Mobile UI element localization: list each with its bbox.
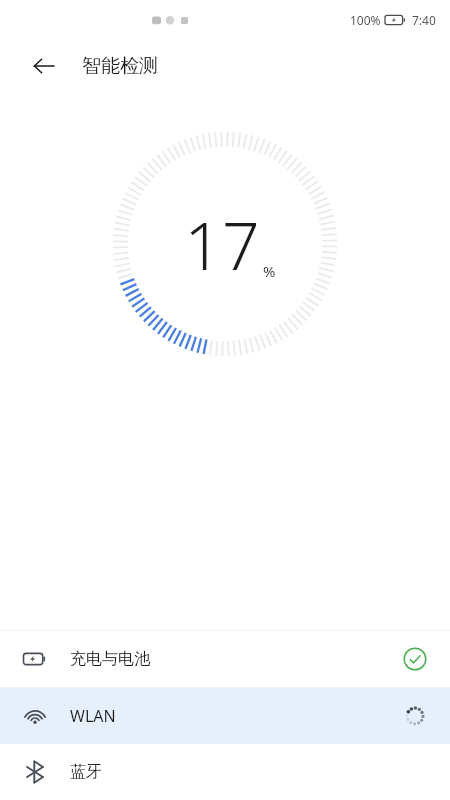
button[interactable]: Back xyxy=(24,46,64,86)
button[interactable]: 充电与电池 xyxy=(0,631,450,687)
staticText: WLAN xyxy=(70,705,116,727)
staticText: % xyxy=(263,261,276,281)
staticText: 7:40 xyxy=(412,12,436,28)
staticText: 智能检测 xyxy=(82,54,158,78)
staticText: 17 xyxy=(184,199,260,289)
staticText: 充电与电池 xyxy=(70,649,150,669)
button[interactable]: 蓝牙 xyxy=(0,744,450,800)
staticText: 100% xyxy=(350,12,381,28)
staticText: 蓝牙 xyxy=(70,762,102,782)
button[interactable]: WLAN xyxy=(0,688,450,744)
